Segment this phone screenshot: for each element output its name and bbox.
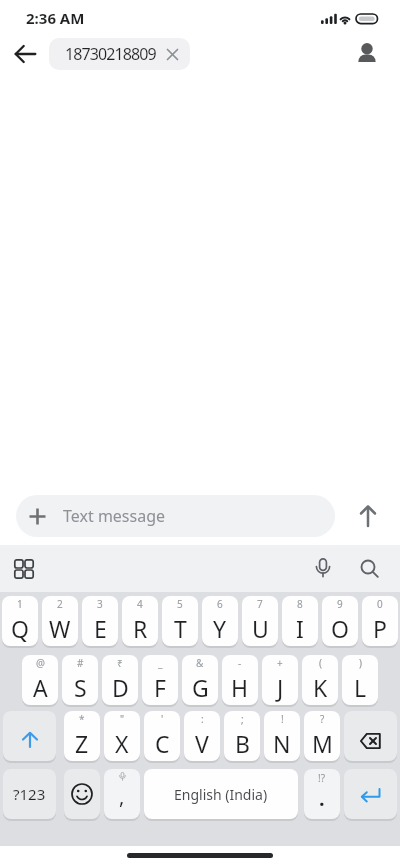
button[interactable]: ? [304, 711, 340, 761]
staticText: * [79, 712, 85, 726]
staticText: R [133, 613, 148, 644]
button[interactable]: !? [304, 769, 340, 819]
button[interactable]: ! [264, 711, 300, 761]
staticText: ?123 [13, 784, 46, 804]
button[interactable]: @ [22, 655, 58, 705]
staticText: X [115, 728, 129, 759]
button[interactable] [14, 559, 34, 579]
staticText: ₹ [117, 656, 123, 670]
staticText: + [277, 656, 283, 670]
staticText: . [319, 785, 325, 812]
staticText: H [231, 672, 249, 703]
staticText: 8 [297, 597, 303, 611]
staticText: P [373, 613, 387, 644]
staticText: O [331, 613, 349, 644]
staticText: W [49, 613, 71, 644]
staticText: !? [318, 771, 326, 785]
staticText: G [192, 672, 209, 703]
staticText: 9 [337, 597, 343, 611]
button[interactable] [344, 769, 397, 819]
staticText: _ [158, 656, 163, 670]
button[interactable]: _ [142, 655, 178, 705]
staticText: S [74, 672, 87, 703]
staticText: N [273, 728, 291, 759]
staticText: @ [36, 656, 45, 670]
staticText: Z [75, 728, 89, 759]
button[interactable]: ' [144, 711, 180, 761]
button[interactable] [360, 559, 380, 579]
staticText: : [201, 712, 204, 726]
button[interactable]: ) [342, 655, 378, 705]
button[interactable] [64, 769, 100, 819]
staticText: ' [161, 712, 164, 726]
button[interactable]: ; [224, 711, 260, 761]
staticText: 6 [217, 597, 223, 611]
button[interactable] [354, 502, 382, 530]
button[interactable]: 18730218809 [49, 38, 190, 70]
staticText: ; [241, 712, 244, 726]
button[interactable]: + [262, 655, 298, 705]
button[interactable]: English (India) [144, 769, 298, 819]
staticText: - [238, 656, 242, 670]
staticText: ) [359, 656, 362, 670]
staticText: K [313, 672, 328, 703]
staticText: D [112, 672, 129, 703]
staticText: ! [281, 712, 284, 726]
staticText: Text message [63, 505, 166, 527]
staticText: B [235, 728, 250, 759]
staticText: , [119, 783, 125, 810]
button[interactable]: ( [302, 655, 338, 705]
staticText: J [277, 672, 284, 703]
button[interactable]: : [184, 711, 220, 761]
button[interactable]: * [64, 711, 100, 761]
button[interactable] [314, 558, 332, 580]
staticText: M [312, 728, 333, 759]
staticText: Q [11, 613, 29, 644]
staticText: A [33, 672, 48, 703]
staticText: 3 [97, 597, 103, 611]
button[interactable]: 4 [122, 596, 158, 646]
staticText: F [154, 672, 166, 703]
button[interactable]: 0 [362, 596, 398, 646]
button[interactable]: 3 [82, 596, 118, 646]
button[interactable]: # [62, 655, 98, 705]
button[interactable]: ?123 [3, 769, 56, 819]
staticText: L [354, 672, 367, 703]
button[interactable] [358, 44, 376, 64]
button[interactable]: 7 [242, 596, 278, 646]
staticText: T [174, 613, 187, 644]
staticText: C [155, 728, 170, 759]
staticText: ( [319, 656, 322, 670]
staticText: 4 [137, 597, 143, 611]
staticText: 1 [17, 597, 23, 611]
staticText: 7 [257, 597, 263, 611]
staticText: 2 [57, 597, 63, 611]
button[interactable]: " [104, 711, 140, 761]
button[interactable]: 6 [202, 596, 238, 646]
button[interactable]: 1 [2, 596, 38, 646]
button[interactable]: 9 [322, 596, 358, 646]
staticText: & [196, 656, 204, 670]
staticText: V [195, 728, 209, 759]
staticText: # [77, 656, 84, 670]
staticText: E [94, 613, 107, 644]
staticText: U [252, 613, 269, 644]
staticText: 2:36 AM [26, 8, 85, 28]
staticText: 18730218809 [65, 43, 156, 65]
staticText: English (India) [174, 785, 268, 804]
staticText: " [120, 712, 125, 726]
button[interactable]: 2 [42, 596, 78, 646]
staticText: 5 [177, 597, 183, 611]
button[interactable] [15, 46, 36, 62]
staticText: ? [320, 712, 325, 726]
button[interactable]: - [222, 655, 258, 705]
button[interactable]: , [104, 769, 140, 819]
button[interactable]: 5 [162, 596, 198, 646]
button[interactable]: Text message [16, 495, 335, 537]
staticText: 0 [377, 597, 383, 611]
button[interactable]: 8 [282, 596, 318, 646]
button[interactable] [344, 711, 397, 761]
button[interactable]: ₹ [102, 655, 138, 705]
button[interactable]: & [182, 655, 218, 705]
button[interactable] [3, 711, 56, 761]
